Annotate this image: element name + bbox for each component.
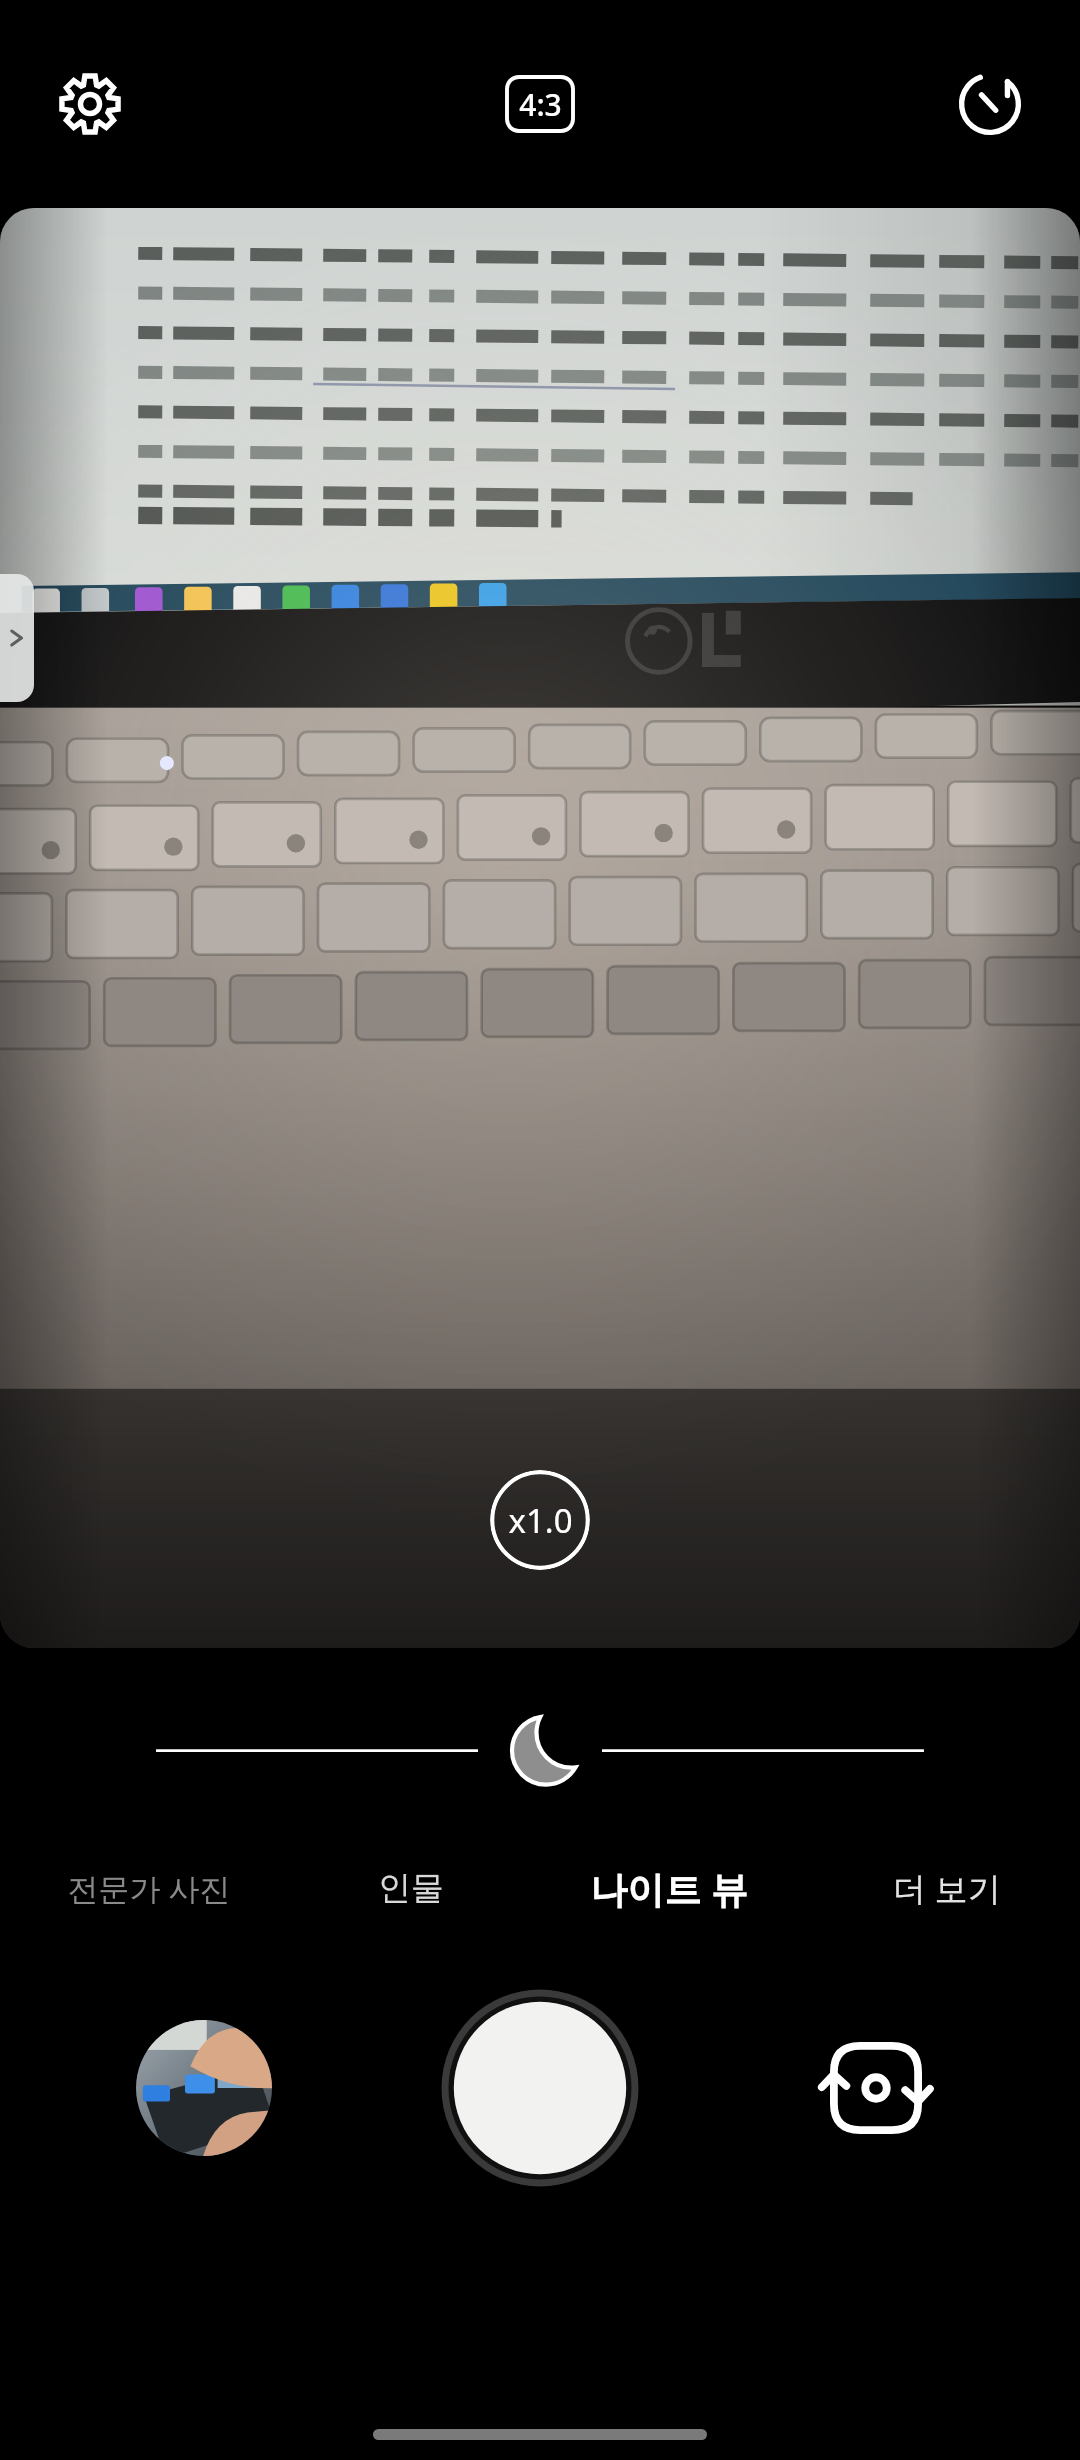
staticText: 4:3 [519, 84, 562, 125]
staticText: x1.0 [508, 1498, 573, 1543]
button[interactable]: 4:3 [503, 73, 577, 135]
button[interactable]: Zoom x1.0 [490, 1470, 590, 1570]
button[interactable]: 나이트 뷰 [524, 1838, 814, 1938]
staticText: 인물 [378, 1867, 444, 1909]
button[interactable]: Timer [942, 56, 1038, 152]
staticText: 더 보기 [893, 1866, 1001, 1911]
button[interactable]: Settings [42, 56, 138, 152]
staticText: 나이트 뷰 [590, 1863, 748, 1914]
button[interactable] [0, 1700, 1080, 1810]
button[interactable]: Switch camera [808, 2020, 944, 2156]
staticText: 전문가 사진 [67, 1867, 231, 1909]
button[interactable]: Gallery [136, 2020, 272, 2156]
button[interactable]: 더 보기 [814, 1838, 1080, 1938]
button[interactable]: Open panel [0, 574, 34, 702]
button[interactable]: Take photo [440, 1988, 640, 2188]
button[interactable]: 전문가 사진 [0, 1838, 298, 1938]
button[interactable]: 인물 [298, 1838, 524, 1938]
